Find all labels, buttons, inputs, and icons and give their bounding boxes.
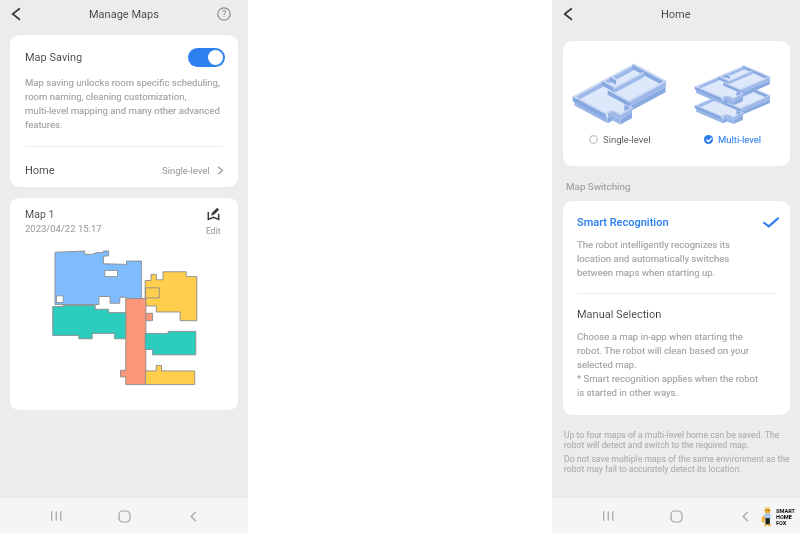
button[interactable]: Multi-level [704,134,762,145]
button[interactable]: Back [732,503,758,529]
staticText: Map Switching [566,181,631,192]
staticText: Home [25,164,55,177]
button[interactable] [188,48,225,67]
button[interactable]: Edit map [206,208,221,236]
staticText: Smart Recognition [577,216,669,229]
staticText: Map 1 [25,208,55,220]
staticText: Edit [206,226,221,236]
staticText: 2023/04/22 15:17 [25,223,102,234]
button[interactable]: Help [216,6,232,22]
button[interactable]: Recent apps [595,503,621,529]
staticText: ? [222,9,227,20]
button[interactable]: Smart Recognition [563,201,790,293]
staticText: Up to four maps of a multi-level home ca… [564,430,780,450]
button[interactable]: Home [10,147,238,187]
staticText: The robot intelligently recognizes its l… [577,237,731,279]
staticText: FOX [776,520,787,526]
button[interactable]: Back [557,3,579,25]
staticText: HOME [776,514,792,520]
staticText: Choose a map in-app when starting the ro… [577,329,759,399]
staticText: Manual Selection [577,308,662,321]
button[interactable]: Manual Selection [563,294,790,415]
button[interactable]: Back [5,3,27,25]
staticText: Map Saving [25,51,83,64]
button[interactable]: Back [180,503,206,529]
staticText: Do not save multiple maps of the same en… [564,454,790,474]
button[interactable]: Recent apps [43,503,69,529]
button[interactable]: Single-level [589,134,651,145]
staticText: Multi-level [718,134,762,145]
staticText: SMART [776,508,796,514]
button[interactable]: Home [111,503,137,529]
button[interactable]: Home [663,503,689,529]
staticText: Home [661,8,691,21]
staticText: Single-level [162,165,210,176]
staticText: Map saving unlocks room specific schedul… [25,75,220,131]
staticText: Manage Maps [89,8,159,21]
staticText: Single-level [603,134,651,145]
